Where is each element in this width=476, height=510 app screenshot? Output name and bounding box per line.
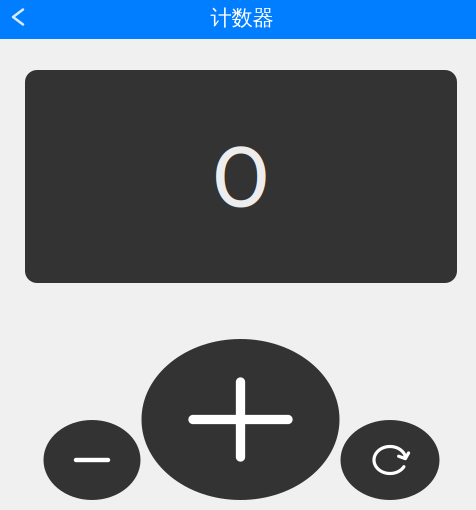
button[interactable]: Reset	[340, 420, 439, 500]
staticText: 0	[211, 125, 270, 228]
staticText: 计数器	[210, 5, 273, 31]
button[interactable]: Increase	[141, 339, 339, 500]
button[interactable]: Decrease	[43, 420, 140, 500]
button[interactable]: Back	[0, 0, 39, 39]
